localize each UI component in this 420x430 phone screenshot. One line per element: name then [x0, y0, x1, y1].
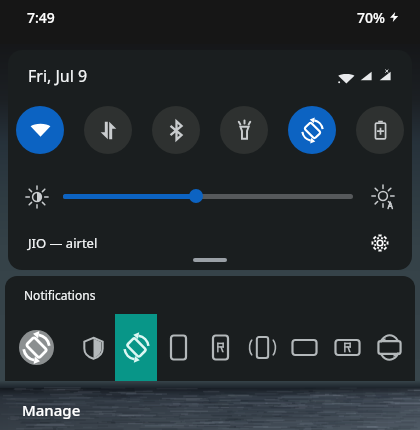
- button[interactable]: Auto rotate on: [121, 332, 152, 363]
- staticText: 70%: [357, 8, 385, 27]
- staticText: Fri, Jul 9: [28, 65, 88, 87]
- button[interactable]: Landscape: [289, 332, 320, 363]
- button[interactable]: Portrait reverse: [205, 332, 236, 363]
- button[interactable]: Manage: [22, 400, 81, 420]
- button[interactable]: Rotation app: [19, 330, 54, 365]
- button[interactable]: Flashlight: [220, 106, 268, 154]
- button[interactable]: Wi-Fi: [16, 106, 64, 154]
- button[interactable]: Portrait: [163, 332, 194, 363]
- staticText: Notifications: [24, 287, 96, 303]
- button[interactable]: Security: [78, 332, 109, 363]
- staticText: JIO — airtel: [28, 234, 98, 252]
- button[interactable]: Landscape reverse: [332, 332, 363, 363]
- button[interactable]: Auto rotate: [115, 314, 157, 381]
- button[interactable]: Mobile data: [84, 106, 132, 154]
- button[interactable]: Bluetooth: [152, 106, 200, 154]
- button[interactable]: Battery saver: [356, 106, 404, 154]
- button[interactable]: Rotate landscape: [374, 332, 405, 363]
- button[interactable]: Settings: [363, 226, 397, 260]
- button[interactable]: [63, 194, 353, 199]
- button[interactable]: Auto rotate: [288, 106, 336, 154]
- button[interactable]: Vibrate: [247, 332, 278, 363]
- staticText: 7:49: [27, 8, 55, 27]
